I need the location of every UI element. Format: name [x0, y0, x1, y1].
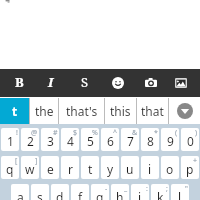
staticText: $: [73, 128, 78, 138]
button[interactable]: e: [41, 156, 59, 179]
button[interactable]: More suggestions: [169, 98, 200, 124]
button[interactable]: w: [21, 156, 39, 179]
button[interactable]: u: [121, 156, 139, 179]
staticText: that's: [66, 103, 98, 119]
staticText: o: [166, 161, 174, 177]
button[interactable]: S: [71, 69, 99, 97]
staticText: *: [154, 128, 158, 138]
button[interactable]: p: [181, 156, 199, 179]
button[interactable]: that: [137, 98, 168, 124]
staticText: 3: [47, 133, 54, 149]
button[interactable]: g: [91, 184, 109, 200]
staticText: +: [193, 156, 198, 166]
staticText: 2: [27, 133, 34, 149]
button[interactable]: I: [37, 69, 65, 97]
staticText: 9: [167, 133, 174, 149]
staticText: g: [96, 189, 104, 200]
button[interactable]: 3: [41, 128, 59, 151]
staticText: ]: [35, 156, 38, 166]
staticText: _: [124, 184, 128, 194]
button[interactable]: 7: [121, 128, 139, 151]
staticText: a: [17, 189, 24, 200]
button[interactable]: Take photo: [137, 69, 165, 97]
staticText: 5: [87, 133, 94, 149]
staticText: e: [47, 161, 54, 177]
staticText: k: [157, 189, 164, 200]
button[interactable]: h: [111, 184, 129, 200]
staticText: S: [81, 73, 89, 91]
button[interactable]: k: [151, 184, 169, 200]
button[interactable]: 4: [61, 128, 79, 151]
button[interactable]: 8: [141, 128, 159, 151]
staticText: this: [110, 103, 131, 119]
button[interactable]: B: [5, 69, 33, 97]
button[interactable]: t: [81, 156, 99, 179]
staticText: 0: [187, 133, 194, 149]
staticText: ;: [166, 184, 168, 194]
button[interactable]: the: [30, 98, 58, 124]
button[interactable]: 9: [161, 128, 179, 151]
button[interactable]: this: [105, 98, 136, 124]
staticText: 4: [67, 133, 74, 149]
staticText: p: [186, 161, 194, 177]
staticText: the: [35, 103, 54, 119]
button[interactable]: r: [61, 156, 79, 179]
button[interactable]: 1: [1, 128, 19, 151]
staticText: h: [116, 189, 124, 200]
button[interactable]: 0: [181, 128, 199, 151]
button[interactable]: 5: [81, 128, 99, 151]
button[interactable]: q: [1, 156, 19, 179]
button[interactable]: f: [71, 184, 89, 200]
staticText: i: [148, 161, 152, 177]
staticText: 6: [107, 133, 114, 149]
staticText: d: [56, 189, 64, 200]
staticText: u: [126, 161, 134, 177]
button[interactable]: that's: [59, 98, 104, 124]
staticText: that: [141, 103, 164, 119]
staticText: 1: [7, 133, 14, 149]
staticText: y: [107, 161, 114, 177]
staticText: t: [12, 103, 18, 119]
staticText: [: [15, 156, 18, 166]
staticText: %: [92, 128, 98, 138]
staticText: &: [132, 128, 138, 138]
staticText: @: [31, 128, 38, 138]
button[interactable]: o: [161, 156, 179, 179]
staticText: -: [105, 184, 108, 194]
staticText: #: [53, 128, 58, 138]
staticText: l: [178, 189, 182, 200]
button[interactable]: l: [171, 184, 189, 200]
button[interactable]: Insert emoji: [104, 69, 132, 97]
button[interactable]: s: [31, 184, 49, 200]
staticText: (: [175, 128, 178, 138]
button[interactable]: a: [11, 184, 29, 200]
button[interactable]: y: [101, 156, 119, 179]
staticText: s: [37, 189, 43, 200]
staticText: q: [6, 161, 14, 177]
staticText: ^: [113, 128, 118, 138]
staticText: :: [146, 184, 148, 194]
staticText: 8: [147, 133, 154, 149]
staticText: I: [48, 73, 54, 91]
staticText: f: [78, 189, 83, 200]
staticText: ": [185, 184, 188, 194]
staticText: w: [25, 161, 35, 177]
staticText: !: [16, 128, 18, 138]
button[interactable]: 6: [101, 128, 119, 151]
staticText: t: [88, 161, 93, 177]
button[interactable]: j: [131, 184, 149, 200]
button[interactable]: t: [0, 98, 29, 124]
button[interactable]: Insert image: [167, 69, 195, 97]
staticText: r: [68, 161, 73, 177]
button[interactable]: 2: [21, 128, 39, 151]
staticText: j: [138, 189, 142, 200]
button[interactable]: i: [141, 156, 159, 179]
staticText: 7: [127, 133, 134, 149]
staticText: B: [15, 73, 24, 91]
button[interactable]: d: [51, 184, 69, 200]
staticText: ): [195, 128, 198, 138]
